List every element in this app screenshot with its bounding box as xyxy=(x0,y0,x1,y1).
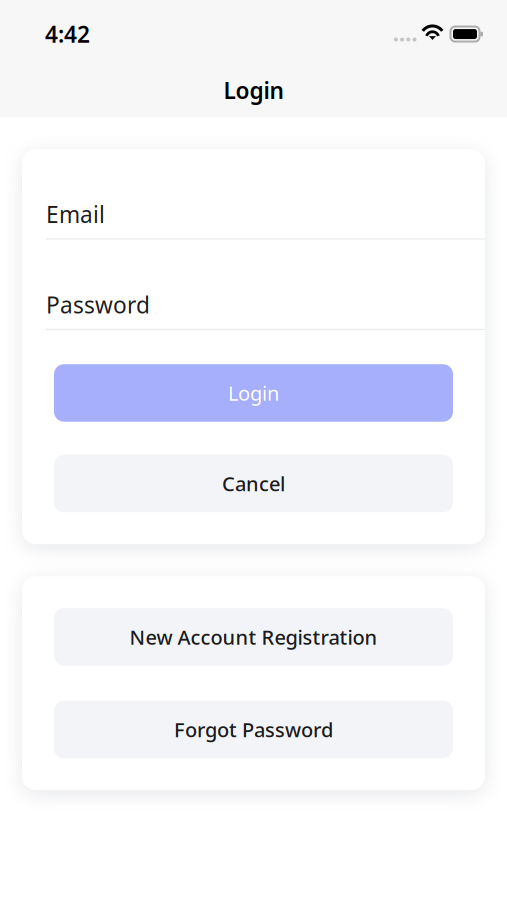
button[interactable]: Login xyxy=(54,364,453,422)
staticText: 4:42 xyxy=(45,19,90,49)
button[interactable]: Cancel xyxy=(54,455,453,512)
staticText: Login xyxy=(228,380,279,406)
staticText: Cancel xyxy=(222,470,285,497)
staticText: New Account Registration xyxy=(129,624,377,650)
staticText: Forgot Password xyxy=(174,716,333,743)
button[interactable]: Forgot Password xyxy=(54,701,453,758)
staticText: Login xyxy=(223,75,283,105)
button[interactable]: Password xyxy=(22,240,485,330)
button[interactable]: New Account Registration xyxy=(54,608,453,666)
button[interactable]: Email xyxy=(22,149,485,240)
staticText: Password xyxy=(46,290,150,320)
staticText: Email xyxy=(46,199,105,229)
